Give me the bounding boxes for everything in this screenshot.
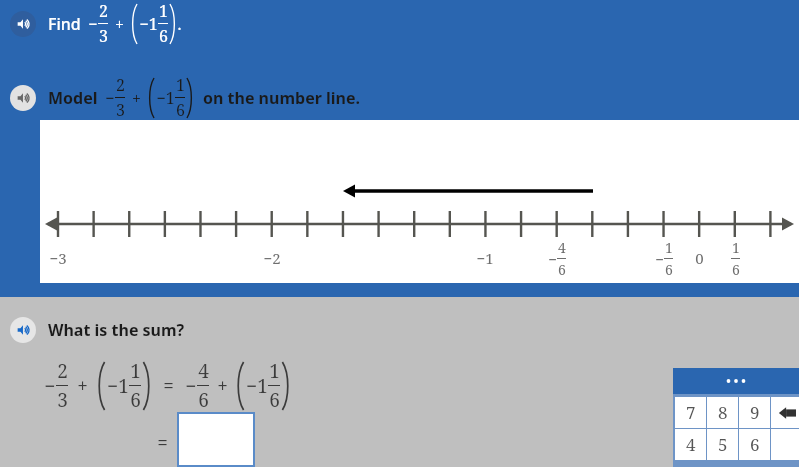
staticText: −: [88, 13, 98, 35]
staticText: −: [185, 373, 197, 399]
staticText: 4: [198, 358, 209, 384]
staticText: 6: [269, 387, 280, 413]
button[interactable]: Read aloud: [10, 11, 36, 37]
staticText: on the number line.: [203, 87, 360, 109]
staticText: 3: [116, 99, 125, 121]
staticText: 3: [99, 25, 108, 47]
staticText: −1: [156, 87, 175, 109]
staticText: 1: [269, 358, 280, 384]
staticText: 0: [695, 248, 704, 268]
staticText: =: [157, 430, 168, 456]
staticText: +: [77, 373, 88, 399]
staticText: −1: [246, 373, 268, 399]
button[interactable]: 7: [675, 397, 706, 428]
staticText: 2: [116, 74, 125, 96]
button[interactable]: Backspace: [771, 397, 799, 428]
staticText: =: [163, 373, 174, 399]
staticText: −: [655, 249, 664, 269]
staticText: 6: [558, 260, 566, 279]
button[interactable]: 9: [739, 397, 770, 428]
staticText: −: [105, 87, 115, 109]
staticText: +: [115, 13, 124, 35]
staticText: 6: [130, 387, 141, 413]
staticText: 1: [159, 0, 168, 22]
staticText: 6: [176, 99, 185, 121]
staticText: −1: [476, 248, 494, 268]
button[interactable]: Read aloud: [10, 85, 36, 111]
staticText: 2: [99, 0, 108, 22]
staticText: −1: [107, 373, 129, 399]
button[interactable]: Answer input: [177, 412, 255, 467]
staticText: 6: [665, 260, 673, 279]
staticText: 4: [686, 433, 696, 456]
staticText: 8: [718, 401, 728, 424]
staticText: 6: [159, 25, 168, 47]
staticText: −: [548, 249, 557, 269]
staticText: −: [44, 373, 56, 399]
staticText: 6: [732, 260, 740, 279]
staticText: −3: [49, 248, 67, 268]
staticText: 2: [57, 358, 68, 384]
staticText: −2: [263, 248, 281, 268]
staticText: 9: [750, 401, 760, 424]
staticText: 5: [718, 433, 728, 456]
button[interactable]: 8: [707, 397, 738, 428]
staticText: 6: [198, 387, 209, 413]
button[interactable]: Read aloud: [10, 317, 36, 343]
staticText: Find: [48, 13, 81, 35]
button[interactable]: 5: [707, 429, 738, 460]
staticText: −1: [139, 13, 158, 35]
staticText: 1: [130, 358, 141, 384]
staticText: What is the sum?: [48, 319, 185, 341]
staticText: 1: [665, 238, 673, 257]
staticText: 4: [558, 238, 566, 257]
staticText: 6: [750, 433, 760, 456]
staticText: 7: [686, 401, 696, 424]
button[interactable]: More options: [673, 368, 799, 394]
button[interactable]: 4: [675, 429, 706, 460]
staticText: 1: [176, 74, 185, 96]
staticText: .: [177, 13, 182, 35]
staticText: +: [217, 373, 228, 399]
staticText: Model: [48, 87, 98, 109]
button[interactable]: 6: [739, 429, 770, 460]
staticText: 1: [732, 238, 740, 257]
staticText: +: [132, 87, 141, 109]
staticText: 3: [57, 387, 68, 413]
